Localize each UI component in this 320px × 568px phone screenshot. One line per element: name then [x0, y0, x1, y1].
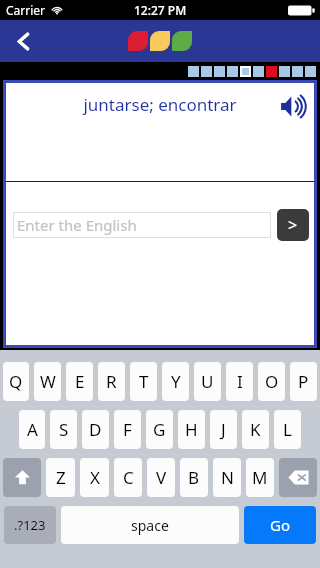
button[interactable]: F — [114, 410, 141, 449]
staticText: O — [265, 370, 279, 393]
button[interactable]: N — [213, 458, 241, 497]
button[interactable]: I — [226, 362, 253, 401]
button[interactable]: X — [80, 458, 109, 497]
button[interactable]: Backspace — [279, 458, 317, 497]
staticText: H — [185, 418, 198, 441]
button[interactable]: D — [82, 410, 109, 449]
staticText: T — [139, 370, 149, 393]
button[interactable]: B — [180, 458, 208, 497]
button[interactable]: K — [242, 410, 269, 449]
button[interactable]: E — [66, 362, 93, 401]
button[interactable]: W — [34, 362, 61, 401]
button[interactable]: H — [178, 410, 205, 449]
button[interactable]: R — [98, 362, 125, 401]
staticText: Carrier — [6, 2, 46, 18]
staticText: P — [298, 370, 309, 393]
staticText: Y — [171, 370, 181, 393]
staticText: Enter the English — [17, 215, 137, 235]
staticText: B — [188, 466, 200, 489]
staticText: space — [131, 516, 169, 535]
button[interactable]: Z — [46, 458, 75, 497]
staticText: V — [156, 466, 167, 489]
staticText: A — [27, 418, 38, 441]
button[interactable]: T — [130, 362, 157, 401]
button[interactable]: Y — [162, 362, 189, 401]
staticText: L — [283, 418, 292, 441]
staticText: Z — [56, 466, 66, 489]
button[interactable]: A — [19, 410, 45, 449]
button[interactable]: Q — [3, 362, 29, 401]
staticText: I — [237, 370, 243, 393]
staticText: Q — [9, 370, 23, 393]
button[interactable]: V — [147, 458, 175, 497]
button[interactable]: space — [61, 506, 239, 544]
button[interactable]: G — [146, 410, 173, 449]
staticText: S — [59, 418, 69, 441]
button[interactable]: M — [246, 458, 274, 497]
staticText: juntarse; encontrar — [83, 93, 237, 116]
button[interactable]: L — [274, 410, 301, 449]
staticText: C — [123, 466, 134, 489]
staticText: J — [221, 418, 226, 441]
staticText: U — [201, 370, 214, 393]
button[interactable]: J — [210, 410, 237, 449]
staticText: Go — [270, 515, 290, 535]
button[interactable]: Enter the English — [13, 212, 271, 238]
staticText: G — [153, 418, 166, 441]
button[interactable]: Play pronunciation — [276, 89, 310, 123]
button[interactable]: Shift — [3, 458, 41, 497]
staticText: > — [288, 214, 298, 236]
button[interactable]: O — [258, 362, 285, 401]
button[interactable]: Submit answer — [277, 209, 309, 241]
button[interactable]: P — [290, 362, 317, 401]
staticText: F — [123, 418, 132, 441]
button[interactable]: .?123 — [4, 506, 56, 544]
staticText: X — [90, 466, 100, 489]
button[interactable]: S — [50, 410, 77, 449]
staticText: N — [221, 466, 234, 489]
staticText: W — [40, 370, 56, 393]
staticText: R — [106, 370, 117, 393]
button[interactable]: U — [194, 362, 221, 401]
button[interactable]: C — [114, 458, 142, 497]
staticText: 12:27 PM — [134, 2, 187, 18]
staticText: D — [89, 418, 102, 441]
staticText: M — [252, 466, 268, 489]
button[interactable]: Go — [244, 506, 316, 544]
staticText: .?123 — [14, 516, 46, 534]
button[interactable]: Back — [0, 20, 46, 62]
staticText: K — [250, 418, 261, 441]
staticText: E — [75, 370, 85, 393]
